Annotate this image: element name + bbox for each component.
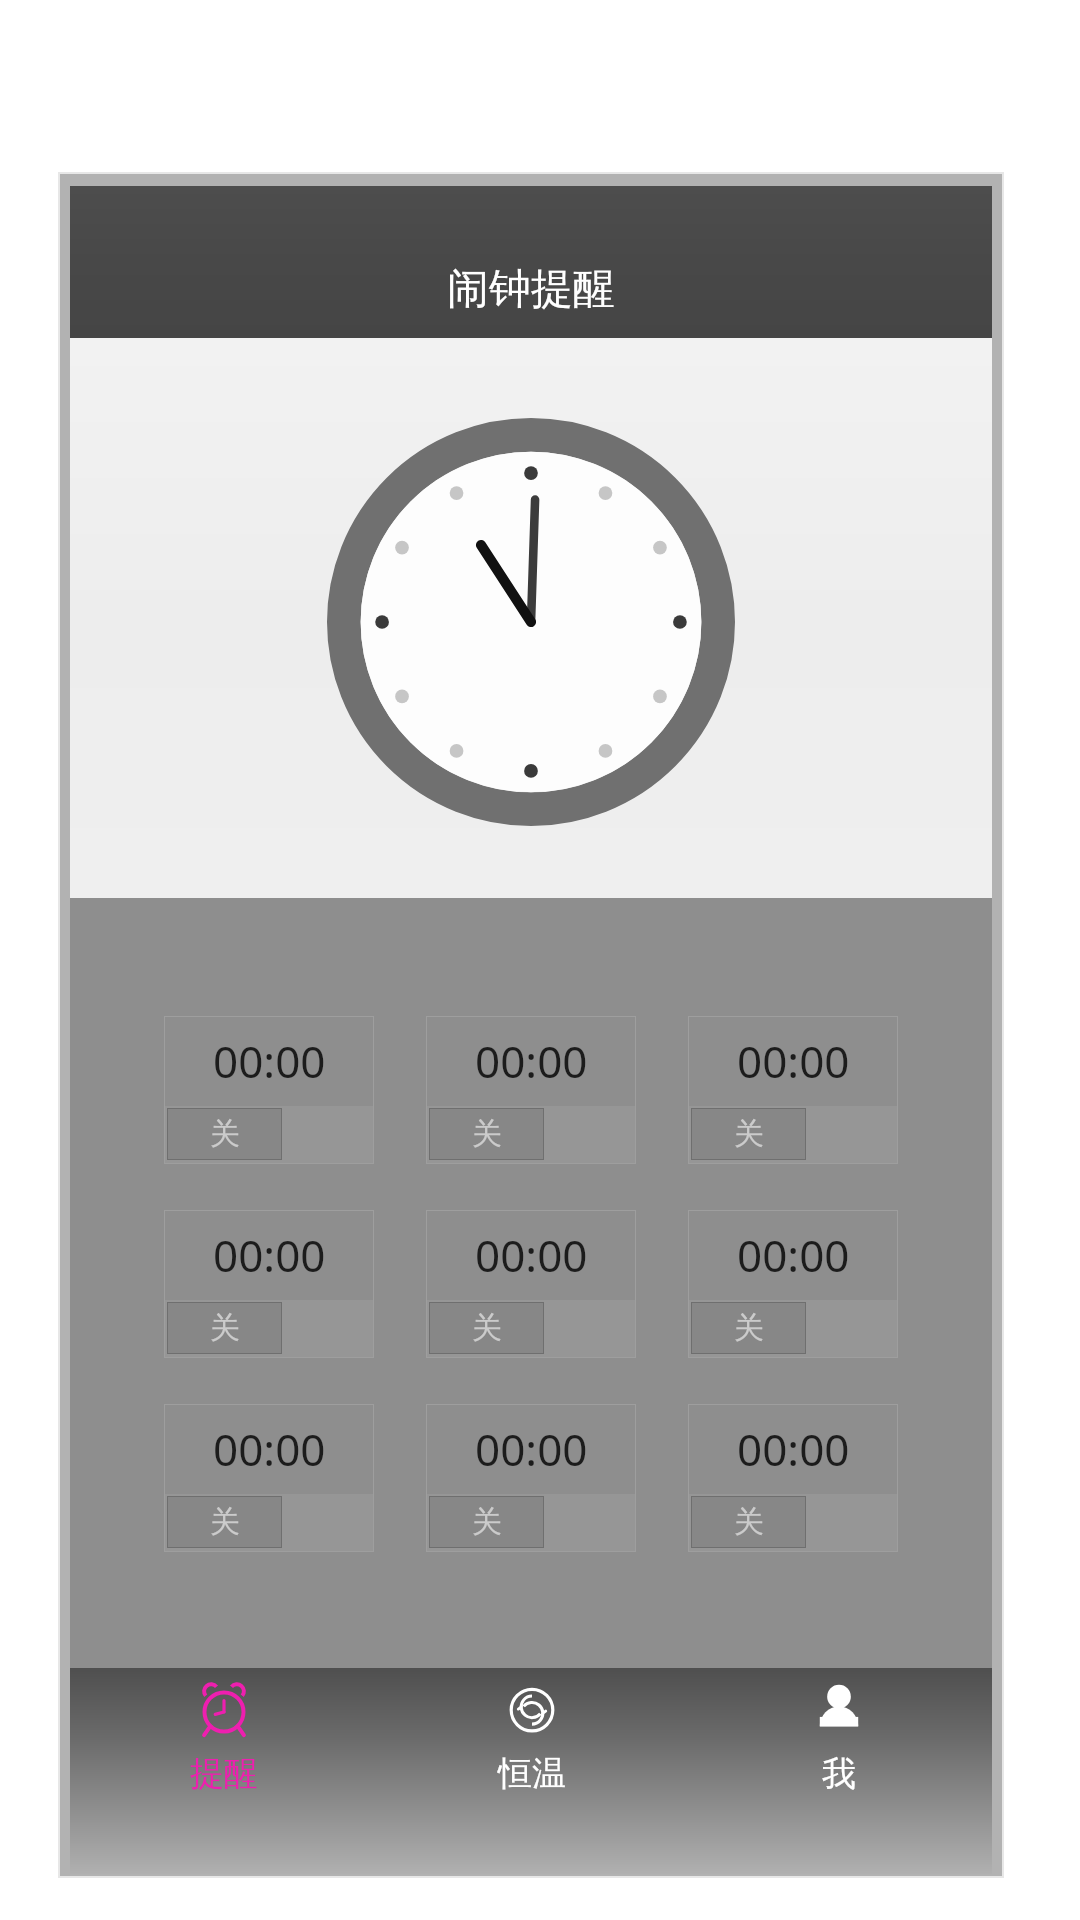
staticText: 关 xyxy=(210,1115,240,1153)
staticText: 关 xyxy=(472,1503,502,1541)
button[interactable]: 00:00 xyxy=(688,1210,898,1358)
button[interactable]: 关 xyxy=(164,1106,374,1164)
staticText: 恒温 xyxy=(498,1752,566,1795)
button[interactable]: 提醒 xyxy=(70,1668,378,1874)
staticText: 提醒 xyxy=(190,1752,258,1795)
staticText: 00:00 xyxy=(213,1225,326,1285)
button[interactable]: 恒温 xyxy=(378,1668,685,1874)
staticText: 关 xyxy=(734,1309,764,1347)
button[interactable]: 关 xyxy=(688,1494,898,1552)
staticText: 00:00 xyxy=(475,1225,588,1285)
button[interactable]: 00:00 xyxy=(164,1016,374,1164)
staticText: 关 xyxy=(472,1309,502,1347)
staticText: 关 xyxy=(210,1309,240,1347)
staticText: 关 xyxy=(734,1115,764,1153)
staticText: 关 xyxy=(734,1503,764,1541)
button[interactable]: 关 xyxy=(164,1300,374,1358)
button[interactable]: 关 xyxy=(164,1494,374,1552)
staticText: 00:00 xyxy=(475,1419,588,1479)
staticText: 00:00 xyxy=(475,1031,588,1091)
staticText: 00:00 xyxy=(213,1419,326,1479)
button[interactable]: 00:00 xyxy=(164,1404,374,1552)
button[interactable]: 我 xyxy=(685,1668,992,1874)
staticText: 闹钟提醒 xyxy=(447,263,615,316)
button[interactable]: 00:00 xyxy=(426,1404,636,1552)
button[interactable]: 关 xyxy=(426,1106,636,1164)
staticText: 关 xyxy=(210,1503,240,1541)
button[interactable]: 00:00 xyxy=(688,1016,898,1164)
staticText: 00:00 xyxy=(213,1031,326,1091)
button[interactable]: 关 xyxy=(688,1106,898,1164)
staticText: 我 xyxy=(822,1752,856,1795)
staticText: 00:00 xyxy=(737,1419,850,1479)
button[interactable]: 00:00 xyxy=(688,1404,898,1552)
button[interactable]: 关 xyxy=(688,1300,898,1358)
staticText: 00:00 xyxy=(737,1031,850,1091)
button[interactable]: 00:00 xyxy=(426,1210,636,1358)
staticText: 关 xyxy=(472,1115,502,1153)
button[interactable]: 00:00 xyxy=(426,1016,636,1164)
staticText: 00:00 xyxy=(737,1225,850,1285)
button[interactable]: 关 xyxy=(426,1494,636,1552)
button[interactable]: 关 xyxy=(426,1300,636,1358)
button[interactable]: 00:00 xyxy=(164,1210,374,1358)
